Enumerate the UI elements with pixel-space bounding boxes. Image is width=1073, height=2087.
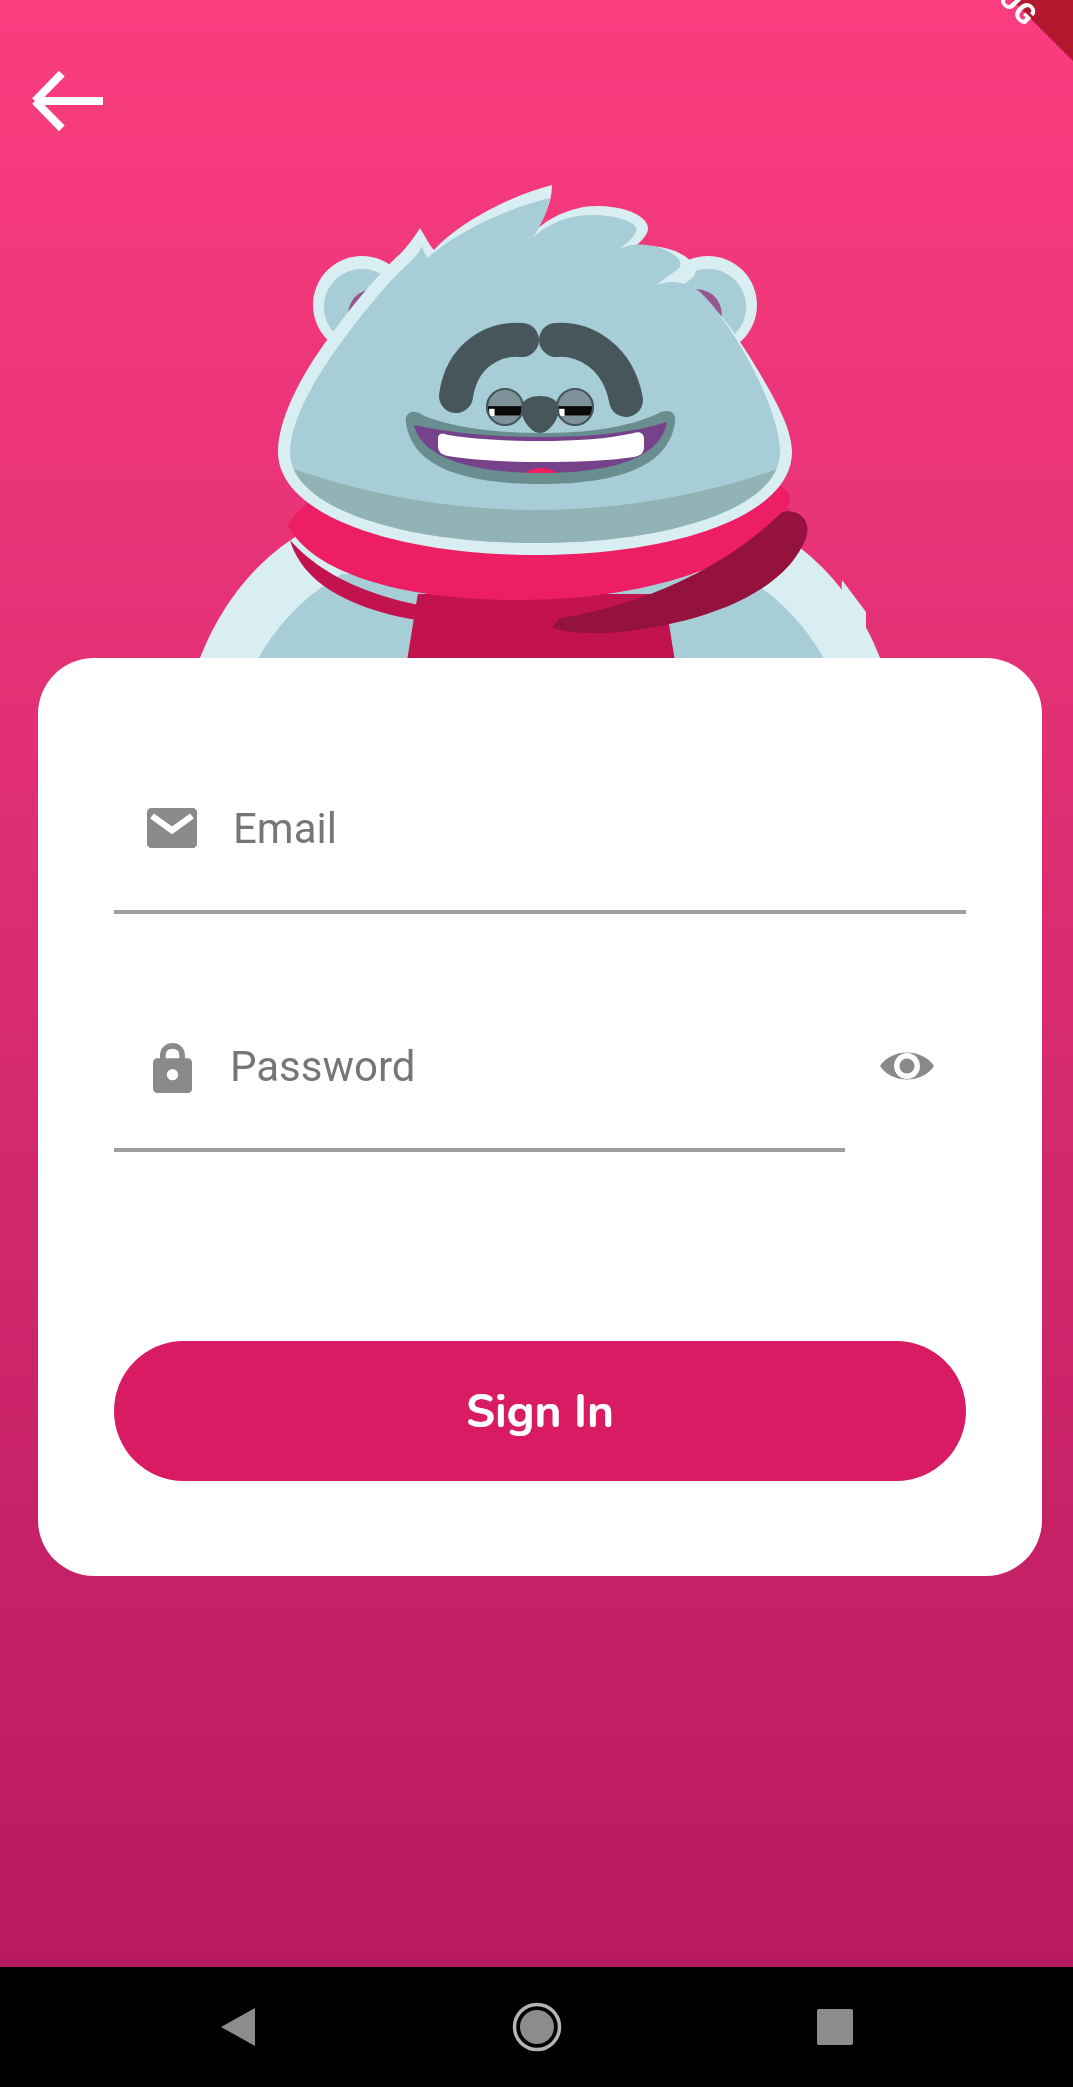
staticText: DEBUG [954, 0, 1044, 33]
button[interactable]: Password [114, 1016, 845, 1152]
button[interactable]: Recents [775, 1967, 895, 2087]
staticText: Email [233, 804, 337, 853]
button[interactable]: Back [14, 46, 124, 156]
staticText: Sign In [466, 1380, 614, 1443]
button[interactable]: Home [477, 1967, 597, 2087]
button[interactable]: Back [178, 1967, 298, 2087]
staticText: Password [230, 1042, 416, 1091]
button[interactable]: Email [114, 778, 966, 914]
button[interactable]: Show password [867, 1016, 947, 1116]
button[interactable]: Sign In [114, 1341, 966, 1481]
